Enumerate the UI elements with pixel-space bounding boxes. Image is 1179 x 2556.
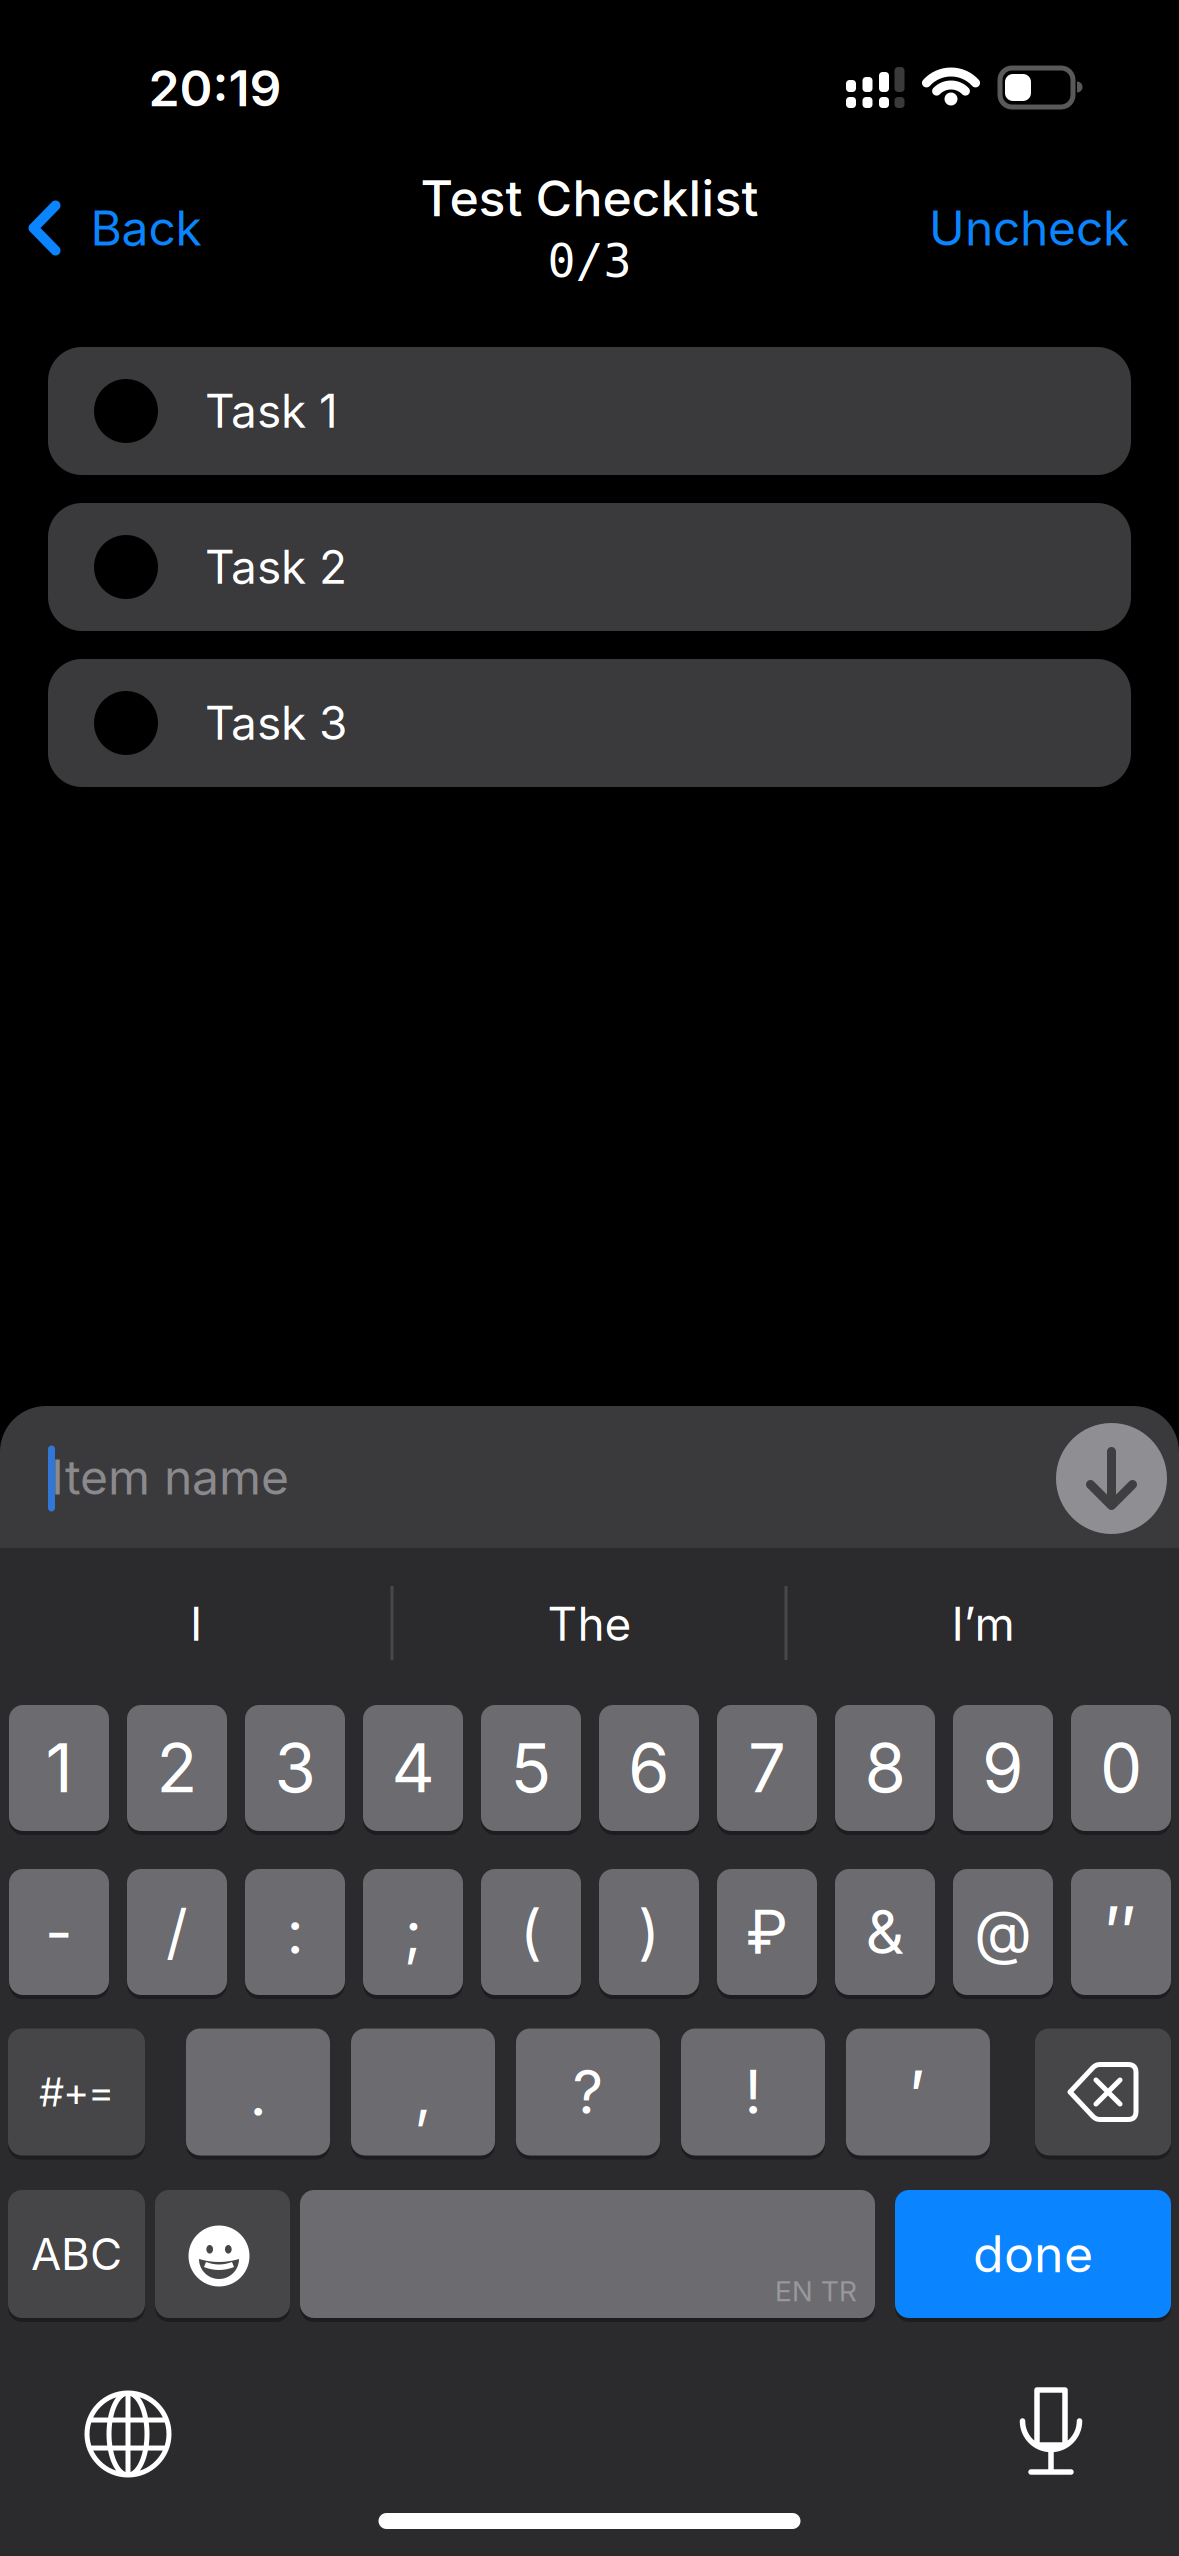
button[interactable]: ′ <box>846 2028 990 2155</box>
staticText: Uncheck <box>929 199 1129 257</box>
staticText: 0/3 <box>547 234 631 288</box>
button[interactable]: ABC <box>8 2190 145 2318</box>
button[interactable]: Back <box>28 199 201 257</box>
button[interactable]: 5 <box>481 1705 581 1831</box>
staticText: : <box>286 1896 303 1968</box>
staticText: ″ <box>1105 1888 1137 1975</box>
button[interactable]: I <box>6 1574 386 1674</box>
button[interactable]: #+= <box>8 2028 145 2155</box>
staticText: Back <box>90 199 201 257</box>
button[interactable]: The <box>399 1574 779 1674</box>
staticText: ₽ <box>746 1896 788 1968</box>
button[interactable]: ! <box>681 2028 825 2155</box>
button[interactable]: Task 2 <box>48 503 1131 631</box>
staticText: 20:19 <box>148 58 281 118</box>
staticText: EN TR <box>775 2274 857 2308</box>
button[interactable]: Item name <box>0 1406 1179 1596</box>
button[interactable]: ″ <box>1071 1869 1171 1995</box>
button[interactable]: 0 <box>1071 1705 1171 1831</box>
button[interactable]: Delete <box>1035 2028 1171 2155</box>
staticText: Task 2 <box>205 539 347 595</box>
staticText: ( <box>520 1896 542 1968</box>
staticText: ; <box>404 1896 422 1968</box>
button[interactable]: ( <box>481 1869 581 1995</box>
staticText: 4 <box>391 1727 434 1809</box>
button[interactable]: I’m <box>793 1574 1173 1674</box>
button[interactable]: 1 <box>9 1705 109 1831</box>
button[interactable]: & <box>835 1869 935 1995</box>
staticText: - <box>45 1896 73 1968</box>
staticText: 2 <box>156 1727 197 1809</box>
button[interactable]: - <box>9 1869 109 1995</box>
staticText: ′ <box>910 2054 926 2138</box>
staticText: I’m <box>951 1596 1014 1652</box>
staticText: 3 <box>274 1727 315 1809</box>
staticText: 5 <box>510 1727 551 1809</box>
staticText: Test Checklist <box>420 168 758 228</box>
staticText: Task 3 <box>205 695 347 751</box>
staticText: ! <box>744 2056 761 2128</box>
button[interactable]: / <box>127 1869 227 1995</box>
staticText: done <box>973 2224 1093 2284</box>
staticText: #+= <box>39 2068 113 2116</box>
staticText: 1 <box>45 1727 72 1809</box>
button[interactable]: : <box>245 1869 345 1995</box>
staticText: & <box>865 1896 904 1968</box>
staticText: I <box>190 1596 202 1652</box>
button[interactable]: 7 <box>717 1705 817 1831</box>
staticText: Item name <box>51 1448 289 1506</box>
button[interactable]: Next keyboard <box>78 2384 178 2484</box>
staticText: / <box>166 1896 188 1968</box>
staticText: ABC <box>31 2227 122 2281</box>
staticText: @ <box>974 1896 1032 1968</box>
button[interactable]: Emoji <box>155 2190 290 2318</box>
staticText: 7 <box>748 1727 786 1809</box>
button[interactable]: ; <box>363 1869 463 1995</box>
button[interactable]: . <box>186 2028 330 2155</box>
staticText: , <box>414 2058 431 2130</box>
button[interactable]: , <box>351 2028 495 2155</box>
button[interactable]: Dictation <box>1001 2389 1101 2477</box>
button[interactable]: done <box>895 2190 1171 2318</box>
button[interactable]: ? <box>516 2028 660 2155</box>
button[interactable]: Space <box>300 2190 875 2318</box>
staticText: 6 <box>628 1727 670 1809</box>
button[interactable]: 2 <box>127 1705 227 1831</box>
button[interactable]: Collapse keyboard <box>1056 1423 1167 1534</box>
staticText: Task 1 <box>205 383 338 439</box>
staticText: 8 <box>864 1727 905 1809</box>
button[interactable]: ) <box>599 1869 699 1995</box>
staticText: . <box>249 2058 266 2130</box>
button[interactable]: 3 <box>245 1705 345 1831</box>
button[interactable]: 6 <box>599 1705 699 1831</box>
button[interactable]: 8 <box>835 1705 935 1831</box>
button[interactable]: Task 1 <box>48 347 1131 475</box>
button[interactable]: 9 <box>953 1705 1053 1831</box>
button[interactable]: @ <box>953 1869 1053 1995</box>
staticText: ? <box>572 2056 603 2128</box>
button[interactable]: Uncheck <box>929 199 1129 257</box>
button[interactable]: 4 <box>363 1705 463 1831</box>
button[interactable]: ₽ <box>717 1869 817 1995</box>
staticText: ) <box>638 1896 660 1968</box>
staticText: The <box>547 1596 631 1652</box>
staticText: 9 <box>982 1727 1024 1809</box>
staticText: 0 <box>1100 1727 1142 1809</box>
button[interactable]: Task 3 <box>48 659 1131 787</box>
